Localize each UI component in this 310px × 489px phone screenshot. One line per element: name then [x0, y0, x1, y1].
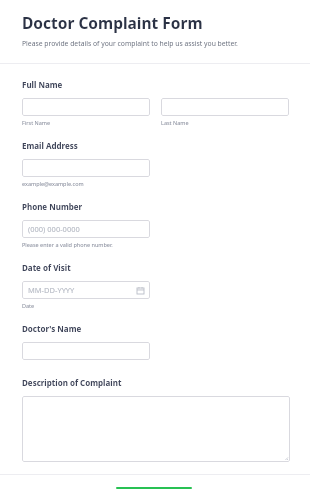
button[interactable]: First Name — [22, 98, 150, 116]
staticText: Doctor Complaint Form — [22, 12, 203, 33]
staticText: Date — [22, 302, 35, 309]
button[interactable]: Doctor's Name — [22, 342, 150, 360]
staticText: Last Name — [161, 119, 189, 126]
button[interactable]: Email Address — [22, 159, 150, 177]
staticText: Full Name — [22, 79, 63, 90]
staticText: MM-DD-YYYY — [28, 285, 75, 295]
staticText: Phone Number — [22, 201, 83, 212]
button[interactable]: Last Name — [161, 98, 289, 116]
staticText: (000) 000-0000 — [28, 224, 80, 234]
button[interactable]: Phone Number — [22, 220, 150, 238]
staticText: Please enter a valid phone number. — [22, 241, 113, 248]
button[interactable]: Description of Complaint — [22, 396, 290, 462]
staticText: Email Address — [22, 140, 78, 151]
button[interactable]: Submit — [116, 487, 192, 489]
staticText: example@example.com — [22, 180, 84, 187]
staticText: Please provide details of your complaint… — [22, 39, 238, 48]
staticText: Doctor's Name — [22, 323, 82, 334]
staticText: Description of Complaint — [22, 377, 122, 388]
staticText: First Name — [22, 119, 51, 126]
button[interactable]: Date of Visit — [22, 281, 150, 299]
staticText: Date of Visit — [22, 262, 71, 273]
